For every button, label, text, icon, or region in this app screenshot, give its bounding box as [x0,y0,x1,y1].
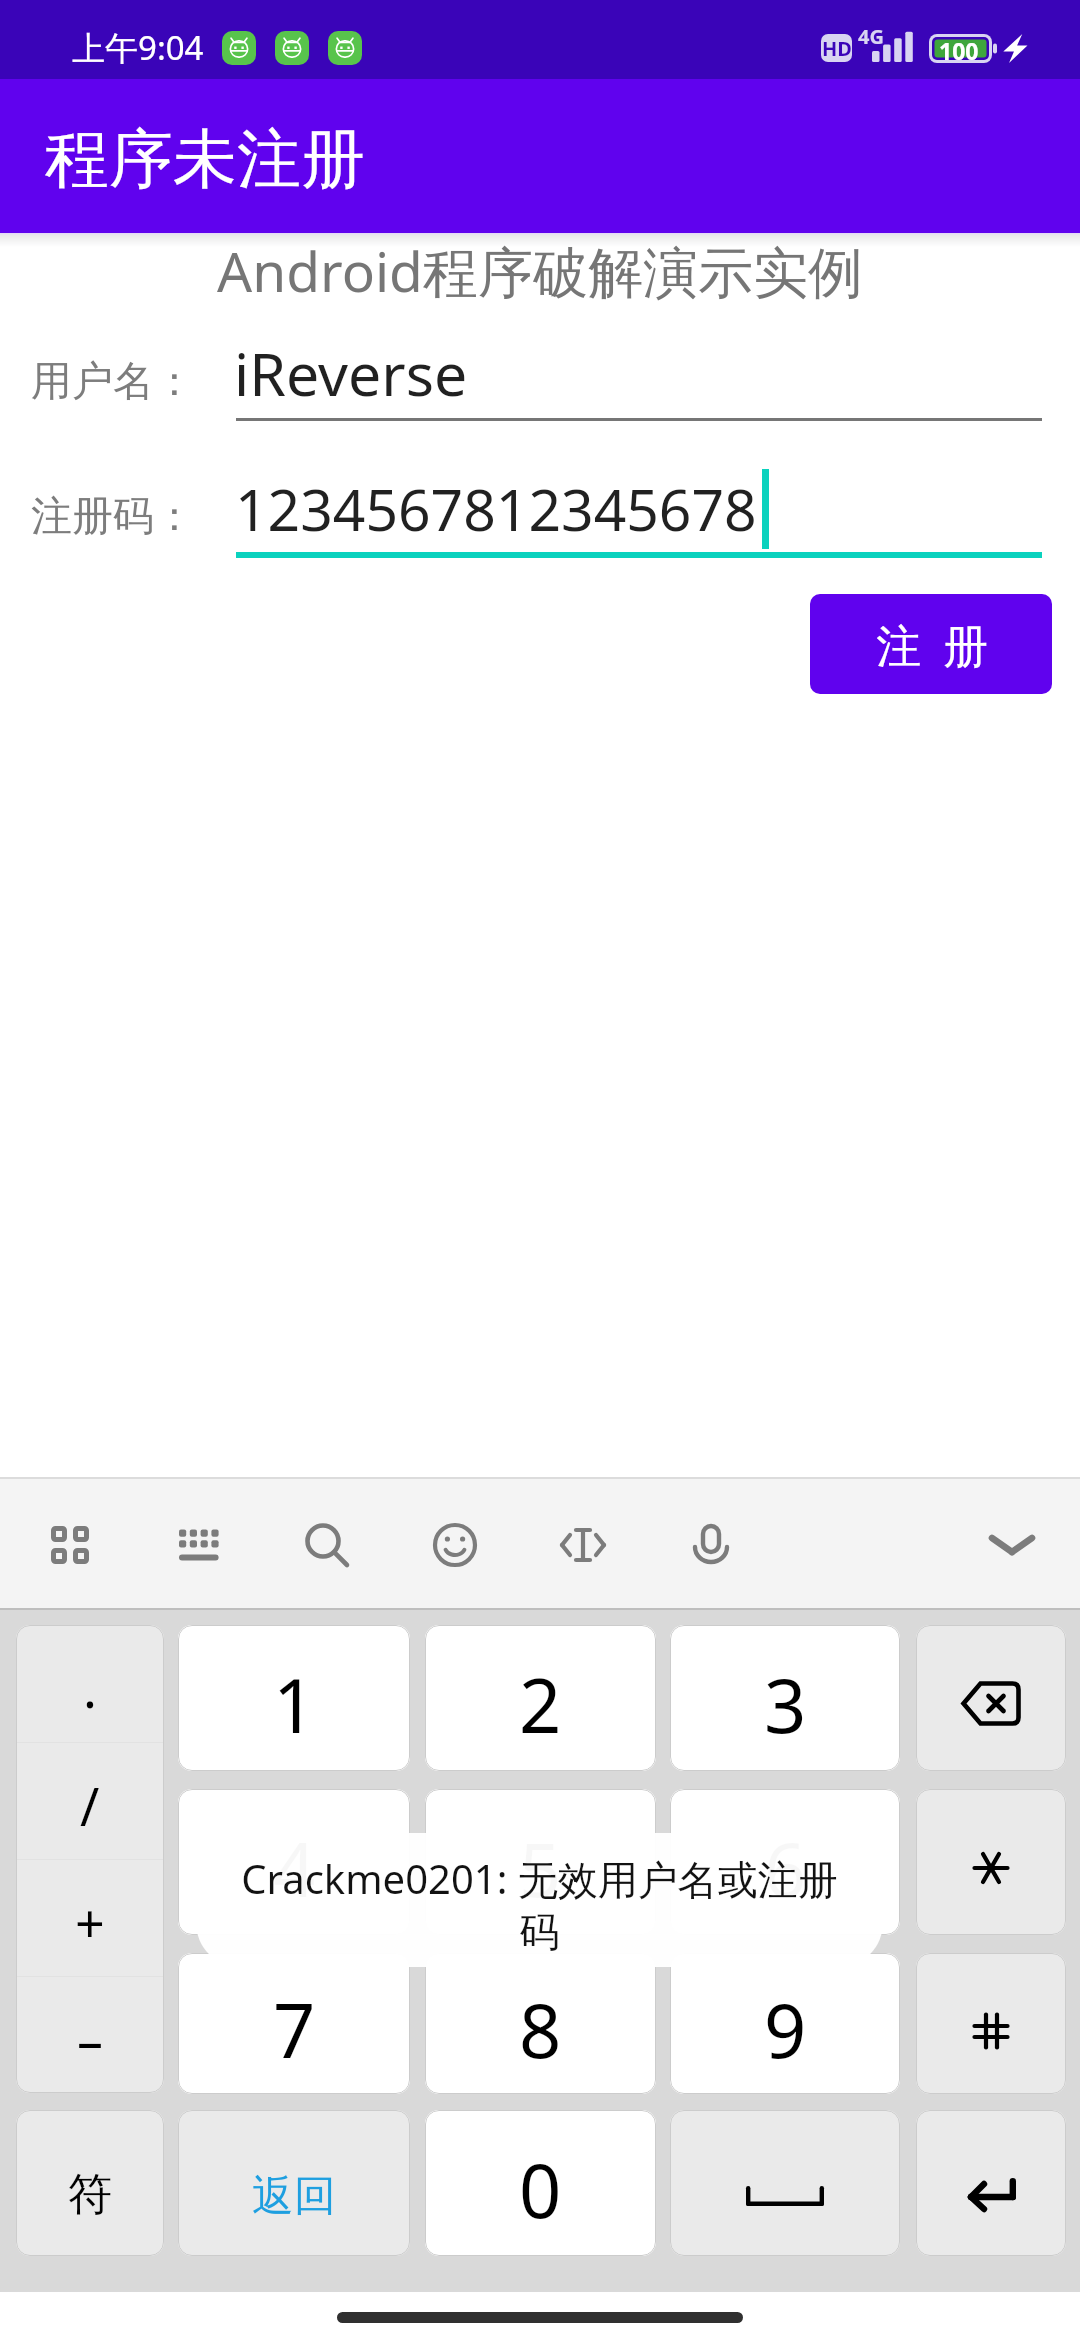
button[interactable]: 2 [425,1625,656,1771]
button[interactable]: 7 [178,1953,410,2094]
staticText: / [80,1770,100,1841]
staticText: 1 [273,1654,316,1755]
button[interactable]: 3 [670,1625,900,1771]
button[interactable]: 9 [670,1953,900,2094]
button[interactable]: 8 [425,1953,656,2094]
button[interactable]: . [16,1625,164,2093]
staticText: 返回 [252,2170,336,2223]
button[interactable]: Asterisk [916,1789,1066,1935]
staticText: 8 [519,1979,562,2080]
button[interactable]: Backspace [916,1625,1066,1771]
staticText: HD [822,35,852,62]
button[interactable]: 4 [178,1789,410,1935]
button[interactable]: 6 [670,1789,900,1935]
staticText: + [75,1887,105,1958]
staticText: 注册 [865,619,999,676]
staticText: 4G [858,23,884,50]
button[interactable]: Emoji [410,1500,500,1590]
staticText: . [83,1652,97,1723]
button[interactable]: . [16,1625,164,1742]
staticText: 程序未注册 [45,119,365,200]
staticText: 符 [68,2167,112,2222]
button[interactable]: 0 [425,2110,656,2256]
button[interactable]: Search [282,1500,372,1590]
button[interactable]: Toolbox [25,1500,115,1590]
button[interactable]: Move cursor [538,1500,628,1590]
button[interactable]: Keyboard layout [154,1500,244,1590]
button[interactable]: 1234567812345678 [236,469,1042,558]
button[interactable]: – [16,1977,164,2093]
button[interactable]: 返回 [178,2110,410,2256]
staticText: 2 [519,1654,562,1755]
staticText: 用户名： [31,356,195,408]
button[interactable]: / [16,1743,164,1859]
staticText: 5 [519,1818,562,1919]
button[interactable]: 注册 [810,594,1052,694]
staticText: 4 [273,1818,316,1919]
staticText: 100 [939,35,979,64]
staticText: 上午9:04 [72,25,204,70]
button[interactable]: Hash [916,1953,1066,2094]
staticText: 注册码： [31,491,195,543]
staticText: Crackme0201: 无效用户名或注册码 [222,1851,857,1958]
staticText: 6 [764,1818,807,1919]
button[interactable]: Hide keyboard [967,1500,1057,1590]
button[interactable]: Space [670,2110,900,2256]
staticText: – [77,2004,104,2075]
button[interactable]: iReverse [236,335,1042,421]
button[interactable]: 5 [425,1789,656,1935]
staticText: 7 [273,1979,316,2080]
button[interactable]: 1 [178,1625,410,1771]
staticText: 1234567812345678 [235,470,757,548]
staticText: 9 [764,1979,807,2080]
staticText: iReverse [234,333,468,413]
button[interactable]: + [16,1860,164,1976]
staticText: 0 [519,2139,562,2240]
button[interactable]: Voice input [666,1500,756,1590]
button[interactable]: Enter [916,2110,1066,2256]
button[interactable]: 符 [16,2110,164,2256]
staticText: 3 [764,1654,807,1755]
staticText: Android程序破解演示实例 [0,233,1080,308]
